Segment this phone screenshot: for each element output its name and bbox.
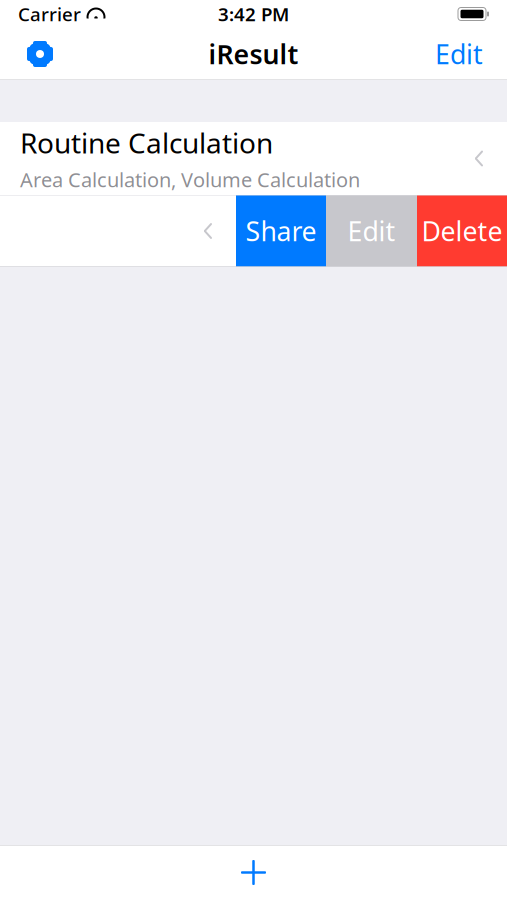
- staticText: Delete: [421, 213, 502, 249]
- staticText: 3:42 PM: [218, 2, 289, 26]
- button[interactable]: Settings: [14, 28, 66, 80]
- button[interactable]: Edit: [326, 195, 417, 266]
- staticText: Carrier: [18, 2, 81, 26]
- staticText: Area Calculation, Volume Calculation: [20, 166, 360, 193]
- button[interactable]: Delete: [417, 195, 507, 266]
- button[interactable]: Add: [223, 845, 283, 900]
- button[interactable]: Routine Calculation: [0, 122, 507, 195]
- staticText: iResult: [208, 36, 298, 72]
- button[interactable]: Share: [236, 195, 326, 266]
- staticText: Edit: [435, 36, 483, 72]
- staticText: Share: [245, 213, 316, 249]
- staticText: Routine Calculation: [20, 124, 273, 161]
- button[interactable]: Edit: [425, 24, 493, 84]
- staticText: Edit: [347, 213, 395, 249]
